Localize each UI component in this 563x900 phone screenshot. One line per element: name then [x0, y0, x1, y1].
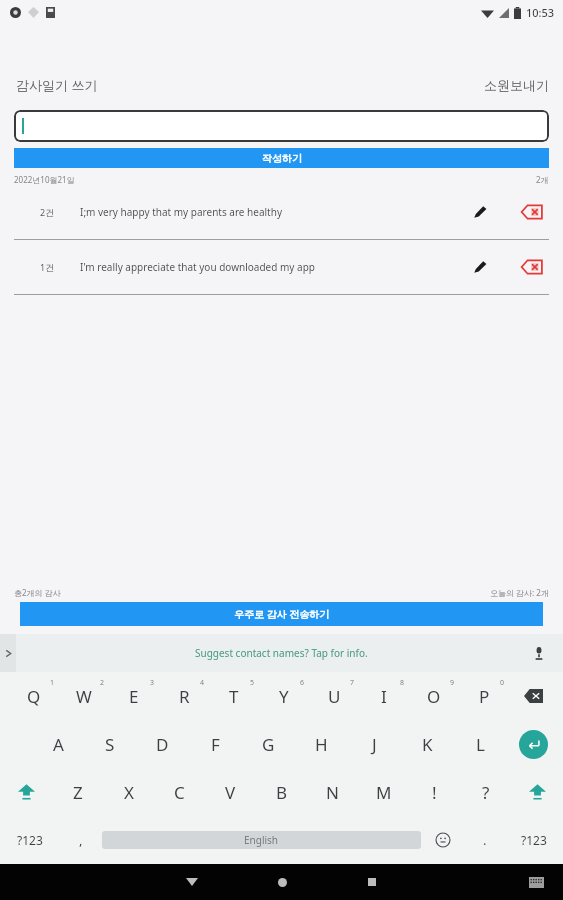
button[interactable]: V: [205, 768, 256, 816]
button[interactable]: ?123: [505, 816, 563, 864]
staticText: K: [422, 733, 433, 756]
button[interactable]: Enter: [507, 720, 559, 768]
button[interactable]: O: [409, 672, 459, 720]
staticText: Q: [27, 685, 41, 708]
button[interactable]: Delete: [515, 195, 549, 229]
staticText: B: [276, 781, 288, 804]
staticText: I: [381, 685, 387, 708]
staticText: 2: [100, 678, 105, 688]
staticText: ?: [482, 781, 490, 804]
staticText: 감사일기 쓰기: [16, 76, 98, 94]
staticText: 1건: [40, 261, 55, 273]
staticText: Y: [279, 685, 289, 708]
staticText: 10:53: [526, 5, 555, 20]
button[interactable]: Z: [52, 768, 103, 816]
button[interactable]: Edit: [463, 195, 497, 229]
button[interactable]: 작성하기: [14, 148, 549, 168]
staticText: 1: [50, 678, 55, 688]
staticText: 9: [450, 678, 455, 688]
button[interactable]: Delete: [515, 250, 549, 284]
button[interactable]: Home: [268, 868, 296, 896]
button[interactable]: M: [358, 768, 409, 816]
staticText: 4: [200, 678, 205, 688]
button[interactable]: 소원보내기: [484, 77, 549, 93]
button[interactable]: Edit: [463, 250, 497, 284]
button[interactable]: S: [84, 720, 136, 768]
button[interactable]: I: [359, 672, 409, 720]
staticText: T: [229, 685, 239, 708]
staticText: 3: [150, 678, 155, 688]
button[interactable]: F: [189, 720, 242, 768]
staticText: X: [124, 781, 134, 804]
button[interactable]: ?123: [0, 816, 60, 864]
button[interactable]: Change keyboard: [523, 869, 549, 895]
button[interactable]: Voice input: [529, 643, 549, 663]
staticText: 8: [400, 678, 405, 688]
button[interactable]: D: [136, 720, 189, 768]
staticText: W: [76, 685, 92, 708]
button[interactable]: Recent apps: [358, 868, 386, 896]
button[interactable]: R: [159, 672, 209, 720]
button[interactable]: Q: [8, 672, 59, 720]
staticText: C: [174, 781, 185, 804]
button[interactable]: [14, 110, 549, 142]
button[interactable]: H: [295, 720, 348, 768]
staticText: G: [262, 733, 275, 756]
staticText: J: [372, 733, 377, 756]
staticText: I'm really appreciate that you downloade…: [80, 260, 463, 274]
button[interactable]: ,: [60, 816, 102, 864]
button[interactable]: 우주로 감사 전송하기: [20, 602, 543, 626]
staticText: ?123: [521, 832, 547, 848]
staticText: E: [129, 685, 139, 708]
button[interactable]: Backspace: [509, 672, 557, 720]
staticText: 2022년10월21일: [14, 174, 75, 185]
button[interactable]: K: [401, 720, 454, 768]
button[interactable]: X: [103, 768, 154, 816]
button[interactable]: Back: [178, 868, 206, 896]
staticText: R: [179, 685, 190, 708]
staticText: O: [427, 685, 441, 708]
button[interactable]: .: [465, 816, 505, 864]
staticText: 우주로 감사 전송하기: [234, 607, 330, 621]
staticText: 2건: [40, 206, 55, 218]
button[interactable]: C: [154, 768, 205, 816]
button[interactable]: 2건: [14, 185, 549, 239]
staticText: 7: [350, 678, 355, 688]
button[interactable]: Expand suggestions: [0, 634, 16, 672]
button[interactable]: Emoji: [421, 816, 465, 864]
button[interactable]: L: [454, 720, 507, 768]
staticText: 5: [250, 678, 255, 688]
button[interactable]: A: [32, 720, 84, 768]
button[interactable]: P: [459, 672, 509, 720]
button[interactable]: Shift: [511, 768, 563, 816]
staticText: 0: [500, 678, 505, 688]
button[interactable]: E: [109, 672, 159, 720]
button[interactable]: Suggest contact names? Tap for info.: [195, 646, 368, 660]
staticText: L: [476, 733, 485, 756]
staticText: A: [53, 733, 64, 756]
button[interactable]: Shift: [0, 768, 52, 816]
staticText: I;m very happy that my parents are healt…: [80, 205, 463, 219]
button[interactable]: English: [102, 816, 421, 864]
button[interactable]: U: [309, 672, 359, 720]
button[interactable]: T: [209, 672, 259, 720]
button[interactable]: !: [409, 768, 460, 816]
button[interactable]: Y: [259, 672, 309, 720]
staticText: 2개: [536, 174, 549, 185]
button[interactable]: J: [348, 720, 401, 768]
staticText: 총2개의 감사: [14, 587, 61, 598]
button[interactable]: G: [242, 720, 295, 768]
button[interactable]: ?: [460, 768, 511, 816]
staticText: M: [376, 781, 392, 804]
button[interactable]: 1건: [14, 240, 549, 294]
button[interactable]: W: [59, 672, 109, 720]
button[interactable]: N: [307, 768, 358, 816]
staticText: ?123: [17, 832, 43, 848]
button[interactable]: B: [256, 768, 307, 816]
staticText: 오늘의 감사: 2개: [490, 587, 549, 598]
staticText: S: [105, 733, 115, 756]
staticText: P: [479, 685, 490, 708]
button[interactable]: 감사일기 쓰기: [16, 76, 98, 94]
staticText: 작성하기: [262, 152, 302, 165]
staticText: D: [156, 733, 169, 756]
